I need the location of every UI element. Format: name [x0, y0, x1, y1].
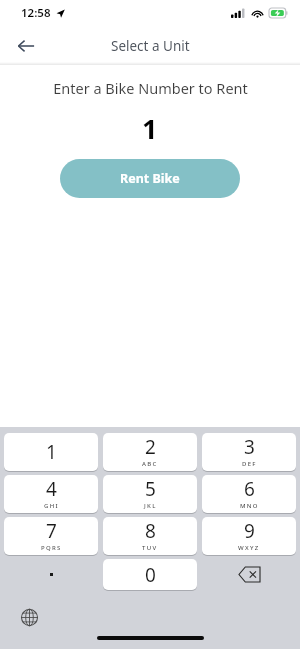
staticText: 12:58	[21, 5, 51, 21]
button[interactable]: Rent Bike	[60, 159, 240, 198]
staticText: Rent Bike	[120, 170, 180, 187]
staticText: 1	[142, 110, 158, 147]
staticText: Select a Unit	[111, 37, 190, 55]
staticText: JKL	[144, 502, 157, 510]
staticText: 2	[145, 434, 156, 460]
button[interactable]: 4	[4, 475, 98, 513]
staticText: PQRS	[41, 544, 62, 552]
staticText: 3	[244, 434, 255, 460]
staticText: MNO	[240, 502, 259, 510]
button[interactable]: 7	[4, 517, 98, 555]
button[interactable]	[4, 559, 98, 590]
button[interactable]: 1	[4, 433, 98, 471]
staticText: 8	[145, 518, 156, 544]
staticText: 5	[145, 476, 156, 502]
button[interactable]: Back	[8, 28, 44, 64]
button[interactable]: Change keyboard	[14, 603, 44, 631]
button[interactable]: 2	[103, 433, 197, 471]
button[interactable]: 8	[103, 517, 197, 555]
button[interactable]: Delete	[202, 559, 296, 590]
staticText: 9	[244, 518, 255, 544]
button[interactable]: 3	[202, 433, 296, 471]
staticText: TUV	[142, 544, 158, 552]
button[interactable]: 5	[103, 475, 197, 513]
staticText: ABC	[142, 460, 158, 468]
staticText: WXYZ	[238, 544, 260, 552]
staticText: DEF	[242, 460, 257, 468]
staticText: GHI	[44, 502, 59, 510]
staticText: 6	[244, 476, 255, 502]
staticText: 0	[145, 562, 156, 588]
button[interactable]: 0	[103, 559, 197, 590]
button[interactable]: 9	[202, 517, 296, 555]
staticText: Enter a Bike Number to Rent	[53, 78, 248, 98]
button[interactable]: 6	[202, 475, 296, 513]
staticText: 1	[46, 439, 57, 465]
staticText: 7	[46, 518, 57, 544]
staticText: 4	[46, 476, 57, 502]
